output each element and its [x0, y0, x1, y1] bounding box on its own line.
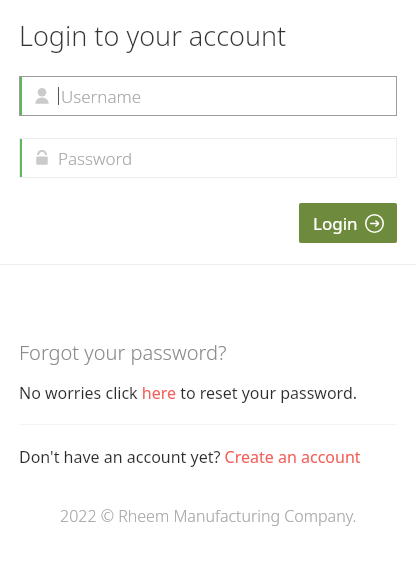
button[interactable]: Username field	[19, 76, 397, 116]
staticText: Login to your account	[19, 17, 287, 54]
button[interactable]: Login	[299, 203, 397, 243]
button[interactable]: Don't have an account yet? Create an acc…	[19, 446, 361, 468]
staticText: Don't have an account yet? Create an acc…	[19, 446, 361, 468]
staticText: Forgot your password?	[19, 339, 227, 366]
button[interactable]: Password field	[19, 138, 397, 178]
staticText: Login	[313, 212, 358, 235]
staticText: Password	[58, 147, 133, 170]
staticText: Username	[61, 85, 142, 108]
staticText: No worries click here to reset your pass…	[19, 382, 358, 404]
other: Login	[365, 214, 384, 233]
staticText: 2022 © Rheem Manufacturing Company.	[60, 505, 357, 527]
button[interactable]: No worries click here to reset your pass…	[19, 382, 358, 404]
